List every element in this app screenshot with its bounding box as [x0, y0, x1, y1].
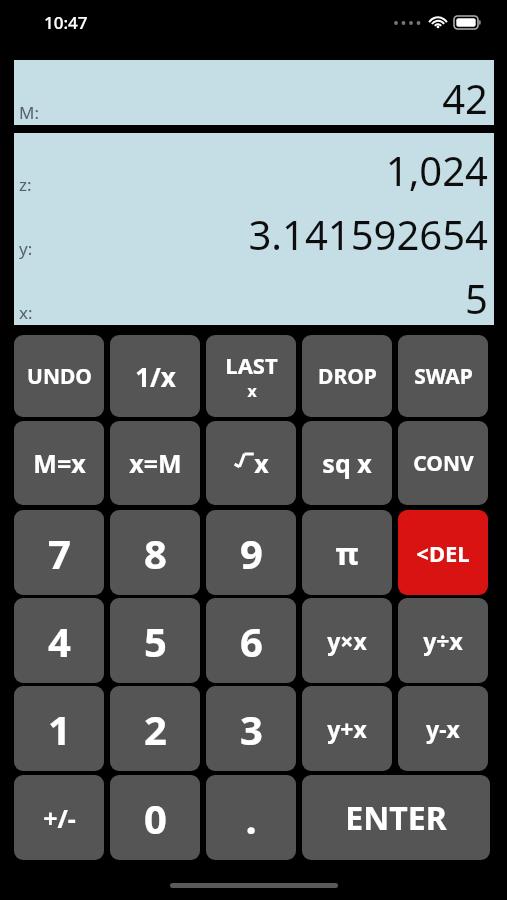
button[interactable]: DROP — [302, 335, 392, 417]
button[interactable]: 1 — [14, 686, 104, 771]
button[interactable]: y+x — [302, 686, 392, 771]
button[interactable]: 6 — [206, 598, 296, 683]
button[interactable]: ENTER — [302, 775, 490, 860]
staticText: x — [254, 446, 269, 480]
staticText: x=M — [129, 446, 182, 480]
button[interactable]: 2 — [110, 686, 200, 771]
button[interactable]: y÷x — [398, 598, 488, 683]
staticText: x: — [19, 301, 33, 324]
button[interactable]: 9 — [206, 510, 296, 595]
button[interactable]: 0 — [110, 775, 200, 860]
button[interactable]: 5 — [110, 598, 200, 683]
staticText: SWAP — [414, 362, 473, 391]
button[interactable]: x=M — [110, 421, 200, 505]
button[interactable]: <DEL — [398, 510, 488, 595]
staticText: 3 — [240, 702, 263, 756]
button[interactable]: UNDO — [14, 335, 104, 417]
button[interactable]: 7 — [14, 510, 104, 595]
staticText: y×x — [327, 625, 367, 656]
button[interactable]: 1/x — [110, 335, 200, 417]
button[interactable]: SWAP — [398, 335, 488, 417]
staticText: 42 — [442, 71, 488, 125]
button[interactable]: π — [302, 510, 392, 595]
staticText: CONV — [413, 449, 474, 478]
staticText: 10:47 — [44, 11, 88, 34]
button[interactable]: 4 — [14, 598, 104, 683]
button[interactable]: y×x — [302, 598, 392, 683]
staticText: 1/x — [135, 359, 176, 394]
button[interactable]: sq x — [302, 421, 392, 505]
staticText: y: — [19, 237, 33, 260]
button[interactable]: +/- — [14, 775, 104, 860]
staticText: DROP — [318, 362, 377, 391]
button[interactable]: CONV — [398, 421, 488, 505]
button[interactable]: y-x — [398, 686, 488, 771]
staticText: LAST — [225, 350, 278, 380]
button[interactable]: Square root of x — [206, 421, 296, 505]
staticText: y-x — [426, 713, 460, 744]
staticText: 8 — [144, 526, 167, 580]
staticText: ENTER — [345, 796, 447, 840]
staticText: sq x — [322, 446, 372, 480]
button[interactable]: M=x — [14, 421, 104, 505]
staticText: 1,024 — [385, 143, 488, 197]
button[interactable]: . — [206, 775, 296, 860]
button[interactable]: 3 — [206, 686, 296, 771]
staticText: 4 — [48, 614, 71, 668]
staticText: M: — [19, 101, 39, 124]
staticText: 9 — [240, 526, 263, 580]
staticText: . — [245, 791, 257, 845]
staticText: y÷x — [423, 625, 463, 656]
staticText: 5 — [144, 614, 167, 668]
staticText: 0 — [144, 791, 167, 845]
staticText: y+x — [327, 713, 367, 744]
staticText: 3.141592654 — [248, 207, 488, 261]
staticText: 5 — [465, 271, 488, 325]
staticText: 1 — [48, 702, 71, 756]
button[interactable]: 8 — [110, 510, 200, 595]
staticText: z: — [19, 173, 32, 196]
staticText: M=x — [33, 446, 86, 480]
button[interactable]: Last x — [206, 335, 296, 417]
staticText: π — [335, 532, 359, 574]
staticText: 7 — [48, 526, 71, 580]
staticText: <DEL — [416, 538, 470, 568]
staticText: 6 — [240, 614, 263, 668]
staticText: +/- — [43, 801, 76, 835]
staticText: x — [247, 380, 257, 402]
staticText: 2 — [144, 702, 167, 756]
staticText: UNDO — [27, 362, 92, 391]
